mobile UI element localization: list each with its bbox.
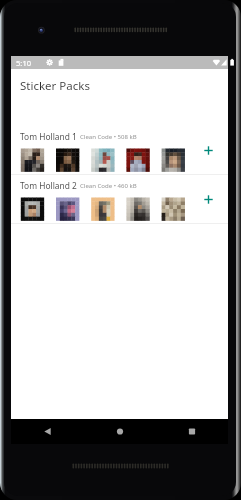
staticText: Tom Holland 1 <box>20 131 77 142</box>
staticText: Clean Code • 460 kB <box>80 182 137 190</box>
button[interactable]: Back <box>11 419 84 444</box>
staticText: Clean Code • 508 kB <box>80 133 137 141</box>
button[interactable]: Tom Holland 1 <box>11 125 228 174</box>
button[interactable]: Add sticker pack <box>198 140 218 160</box>
button[interactable]: Tom Holland 2 <box>11 174 228 223</box>
staticText: 5:10 <box>16 58 32 68</box>
button[interactable]: Home <box>84 419 156 444</box>
staticText: Tom Holland 2 <box>20 180 77 191</box>
button[interactable]: Recents <box>156 419 228 444</box>
staticText: Sticker Packs <box>20 78 90 94</box>
button[interactable]: Add sticker pack <box>198 189 218 209</box>
